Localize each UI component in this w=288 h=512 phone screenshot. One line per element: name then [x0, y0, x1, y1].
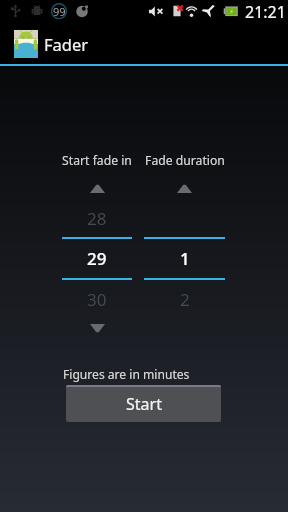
button[interactable]: Start: [66, 385, 221, 422]
button[interactable]: Decrement Start fade in: [62, 316, 132, 340]
button[interactable]: Fader: [0, 23, 288, 64]
staticText: Start: [126, 393, 162, 415]
button[interactable]: 1: [144, 240, 225, 277]
staticText: 21:21: [245, 1, 286, 23]
staticText: 28: [87, 207, 107, 230]
staticText: 99: [53, 4, 66, 19]
staticText: 29: [87, 247, 107, 270]
staticText: Fader: [44, 33, 89, 55]
staticText: 1: [180, 247, 190, 270]
button[interactable]: Increment Fade duration: [144, 176, 225, 200]
staticText: Fade duration: [145, 152, 225, 169]
staticText: 2: [180, 288, 190, 311]
button[interactable]: Increment Start fade in: [62, 176, 132, 200]
staticText: Figures are in minutes: [63, 366, 190, 382]
staticText: Start fade in: [62, 152, 132, 169]
button[interactable]: 29: [62, 240, 132, 277]
staticText: 30: [87, 288, 107, 311]
